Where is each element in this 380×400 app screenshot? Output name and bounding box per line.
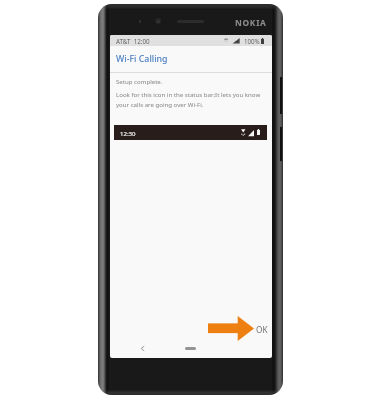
staticText: 12:30 — [120, 129, 136, 137]
staticText: your calls are going over Wi-Fi. — [116, 100, 204, 108]
other: Pointer — [208, 316, 254, 341]
button[interactable]: OK — [256, 324, 268, 335]
button[interactable]: Wi-Fi Calling — [116, 53, 168, 65]
staticText: Setup complete. — [116, 77, 163, 85]
button[interactable]: Back — [139, 344, 147, 354]
staticText: AT&T 12:00 — [116, 37, 150, 45]
staticText: NOKIA — [235, 17, 267, 28]
button[interactable]: Home — [185, 347, 196, 350]
staticText: 100% — [244, 37, 260, 45]
staticText: Look for this icon in the status bar;It … — [116, 90, 261, 98]
